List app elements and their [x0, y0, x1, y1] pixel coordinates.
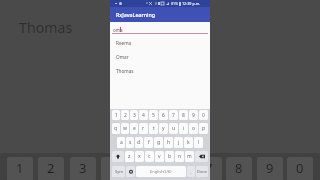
staticText: 8 [182, 112, 185, 119]
staticText: 8 [235, 159, 243, 177]
button[interactable]: Done [196, 166, 208, 177]
staticText: 4 [110, 159, 118, 177]
button[interactable]: a [117, 137, 125, 148]
button[interactable]: d [135, 137, 143, 148]
button[interactable]: g [154, 137, 163, 148]
button[interactable]: oma [110, 22, 210, 36]
button[interactable]: x [135, 151, 144, 162]
staticText: u [172, 125, 176, 132]
staticText: Thomas [19, 18, 73, 37]
button[interactable]: Shift [112, 151, 124, 162]
button[interactable]: r [139, 123, 148, 134]
staticText: v [158, 153, 161, 160]
staticText: 81% [171, 1, 179, 6]
staticText: f [148, 139, 150, 146]
button[interactable]: n [175, 151, 184, 162]
button[interactable]: Reema [110, 36, 210, 50]
staticText: English(UK) [150, 169, 172, 174]
button[interactable]: b [165, 151, 174, 162]
staticText: z [128, 153, 131, 160]
button[interactable]: u [169, 123, 178, 134]
staticText: Sym [115, 169, 123, 174]
button[interactable]: RxJavaLearning [110, 7, 210, 22]
button[interactable]: h [164, 137, 173, 148]
staticText: e [133, 125, 136, 132]
staticText: x [138, 153, 141, 160]
button[interactable]: 8 [179, 110, 188, 120]
staticText: Thomas [116, 68, 134, 74]
button[interactable]: q [112, 123, 120, 134]
staticText: p [202, 125, 206, 132]
staticText: m [187, 153, 192, 160]
button[interactable]: . [187, 166, 195, 177]
button[interactable]: Backspace [195, 151, 208, 162]
button[interactable]: p [199, 123, 208, 134]
staticText: l [198, 139, 200, 146]
staticText: 0 [296, 159, 304, 177]
staticText: j [178, 139, 180, 146]
staticText: g [157, 139, 161, 146]
staticText: 6 [162, 112, 165, 119]
button[interactable]: 2 [121, 110, 129, 120]
button[interactable]: Omar [110, 50, 210, 64]
staticText: 3 [79, 159, 87, 177]
staticText: 9 [192, 112, 195, 119]
staticText: 1 [16, 159, 24, 177]
button[interactable]: English(UK) [136, 166, 186, 177]
button[interactable]: z [125, 151, 134, 162]
staticText: w [123, 125, 127, 132]
staticText: t [153, 125, 155, 132]
staticText: 12:39 p.m. [182, 1, 201, 6]
button[interactable]: t [149, 123, 158, 134]
button[interactable]: e [130, 123, 138, 134]
button[interactable]: i [179, 123, 188, 134]
staticText: 3 [133, 112, 136, 119]
staticText: k [187, 139, 190, 146]
button[interactable]: 3 [130, 110, 138, 120]
staticText: y [162, 125, 165, 132]
button[interactable]: c [145, 151, 154, 162]
staticText: 9 [266, 159, 274, 177]
button[interactable]: 5 [149, 110, 158, 120]
staticText: 1 [115, 112, 118, 119]
button[interactable]: Emoji [126, 166, 135, 177]
button[interactable]: 6 [159, 110, 168, 120]
staticText: 7 [172, 112, 175, 119]
button[interactable]: k [184, 137, 193, 148]
staticText: 7 [205, 159, 213, 177]
staticText: i [183, 125, 185, 132]
button[interactable]: l [194, 137, 203, 148]
staticText: 5 [152, 112, 155, 119]
button[interactable]: Sym [112, 166, 125, 177]
staticText: 0 [202, 112, 205, 119]
staticText: 2 [124, 112, 127, 119]
staticText: . [190, 169, 192, 175]
staticText: Omar [116, 54, 129, 60]
staticText: h [167, 139, 171, 146]
staticText: RxJavaLearning [116, 11, 156, 18]
staticText: r [142, 125, 145, 132]
staticText: b [168, 153, 172, 160]
button[interactable]: m [185, 151, 194, 162]
button[interactable]: j [174, 137, 183, 148]
button[interactable]: v [155, 151, 164, 162]
button[interactable]: w [121, 123, 129, 134]
button[interactable]: 1 [112, 110, 120, 120]
staticText: o [192, 125, 196, 132]
staticText: q [114, 125, 118, 132]
staticText: Done [197, 169, 208, 174]
staticText: n [178, 153, 182, 160]
button[interactable]: s [126, 137, 134, 148]
button[interactable]: o [189, 123, 198, 134]
staticText: Reema [116, 40, 132, 46]
button[interactable]: 0 [199, 110, 208, 120]
button[interactable]: y [159, 123, 168, 134]
button[interactable]: 9 [189, 110, 198, 120]
staticText: s [129, 139, 132, 146]
button[interactable]: f [144, 137, 153, 148]
button[interactable]: 4 [139, 110, 148, 120]
staticText: 2 [47, 159, 55, 177]
staticText: a [120, 139, 123, 146]
button[interactable]: Thomas [110, 64, 210, 78]
button[interactable]: 7 [169, 110, 178, 120]
